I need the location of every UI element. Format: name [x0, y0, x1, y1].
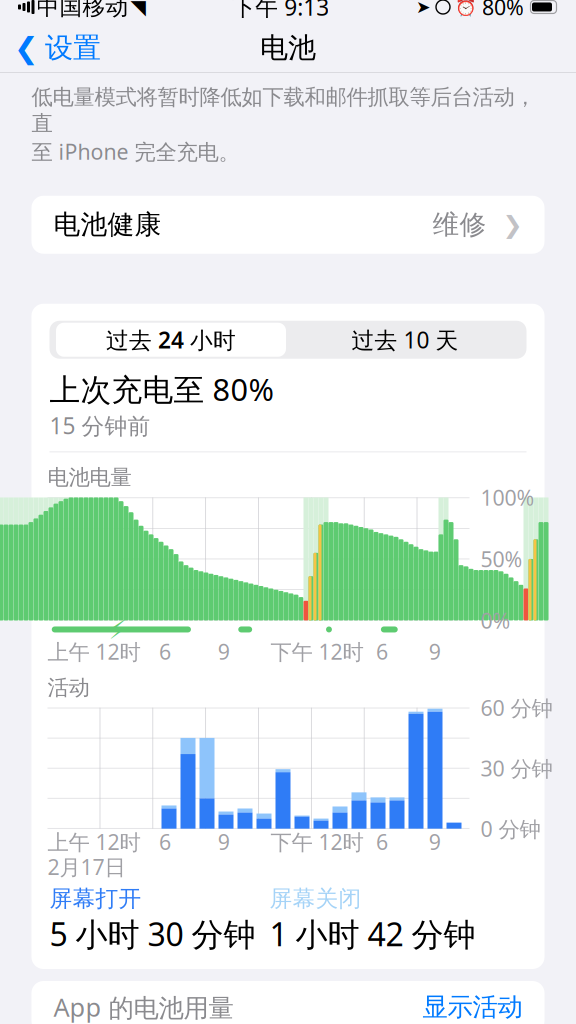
staticText: 上午 12时	[47, 827, 140, 856]
staticText: 9	[218, 637, 230, 666]
staticText: 上午 12时	[47, 637, 140, 666]
button[interactable]: 电池健康	[31, 196, 544, 254]
staticText: 过去 10 天	[351, 325, 458, 355]
staticText: 6	[376, 637, 388, 666]
staticText: 下午 12时	[270, 827, 363, 856]
staticText: 活动	[47, 674, 89, 701]
staticText: 过去 24 小时	[106, 325, 236, 355]
staticText: ⏰	[455, 0, 477, 17]
staticText: 50%	[480, 545, 522, 573]
staticText: 0 分钟	[480, 814, 540, 843]
staticText: 9	[429, 637, 441, 666]
staticText: 电池	[260, 31, 316, 65]
staticText: 6	[159, 637, 171, 666]
staticText: 2月17日	[47, 852, 125, 881]
staticText: 低电量模式将暂时降低如下载和邮件抓取等后台活动，直	[31, 84, 535, 136]
staticText: 下午 9:13	[232, 0, 329, 22]
staticText: ❯	[502, 211, 522, 238]
staticText: 6	[376, 827, 388, 856]
staticText: 1 小时 42 分钟	[269, 912, 475, 955]
staticText: App 的电池用量	[53, 990, 233, 1024]
staticText: 9	[429, 827, 441, 856]
staticText: ⚡︎	[109, 614, 128, 645]
staticText: 30 分钟	[480, 754, 552, 782]
button[interactable]: 过去 24 小时	[54, 321, 288, 359]
staticText: 电池电量	[47, 464, 131, 490]
staticText: ➤	[416, 0, 431, 17]
staticText: ❮	[14, 31, 39, 65]
staticText: 0%	[480, 606, 510, 635]
staticText: 维修	[432, 208, 486, 241]
staticText: 100%	[480, 483, 534, 512]
staticText: ◥	[130, 0, 145, 18]
staticText: 设置	[45, 31, 101, 65]
staticText: 5 小时 30 分钟	[49, 912, 255, 955]
button[interactable]: ❮	[0, 24, 115, 72]
button[interactable]: 过去 10 天	[288, 321, 522, 359]
staticText: 上次充电至 80%	[49, 369, 273, 409]
staticText: 下午 12时	[270, 637, 363, 666]
staticText: 80%	[482, 0, 524, 21]
staticText: 屏幕打开	[49, 885, 141, 912]
staticText: 中国移动	[36, 0, 128, 21]
staticText: 15 分钟前	[49, 410, 150, 441]
staticText: 6	[159, 827, 171, 856]
staticText: 屏幕关闭	[269, 885, 361, 912]
staticText: 9	[218, 827, 230, 856]
staticText: 60 分钟	[480, 693, 552, 722]
staticText: 电池健康	[53, 208, 161, 241]
button[interactable]: 显示活动	[422, 991, 522, 1022]
staticText: 至 iPhone 完全充电。	[31, 137, 239, 166]
staticText: 显示活动	[422, 991, 522, 1022]
